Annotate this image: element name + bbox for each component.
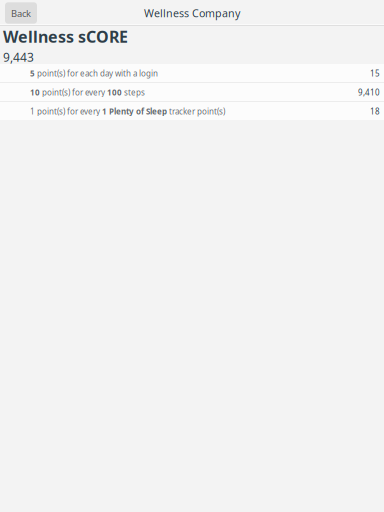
staticText: 10 point(s) for every 100 steps	[30, 87, 145, 98]
staticText: 9,410	[358, 87, 380, 98]
staticText: 5 point(s) for each day with a login	[30, 68, 158, 79]
staticText: 15	[370, 68, 380, 79]
button[interactable]: Back	[5, 2, 37, 24]
button[interactable]: 5 point(s) for each day with a login	[0, 64, 384, 82]
button[interactable]: 1 point(s) for every 1 Plenty of Sleep t…	[0, 102, 384, 120]
staticText: Wellness sCORE	[3, 26, 128, 47]
staticText: 1 point(s) for every 1 Plenty of Sleep t…	[30, 106, 225, 117]
staticText: 9,443	[3, 49, 34, 65]
staticText: 18	[370, 106, 380, 117]
button[interactable]: 10 point(s) for every 100 steps	[0, 83, 384, 101]
staticText: Back	[11, 7, 31, 20]
staticText: Wellness Company	[144, 6, 240, 20]
